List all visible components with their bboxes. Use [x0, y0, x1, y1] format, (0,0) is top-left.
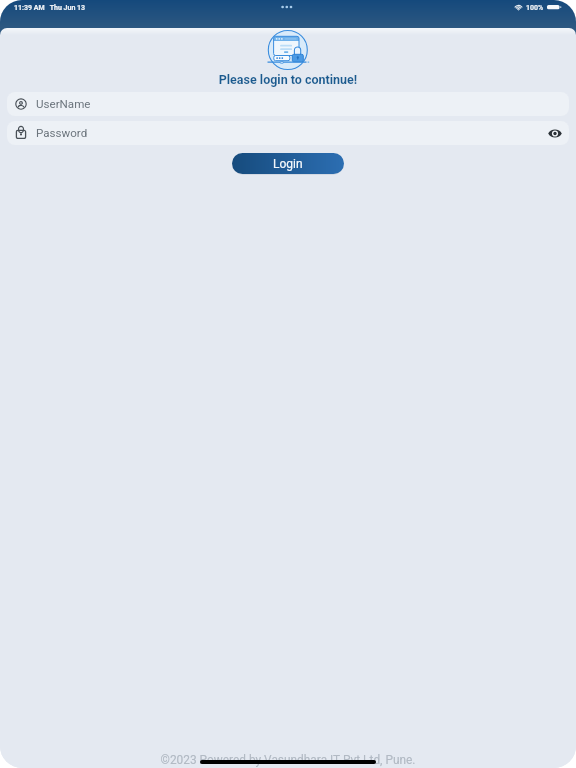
staticText: Please login to continue! [0, 72, 576, 87]
staticText: ©2023 Powered by Vasundhara IT Pvt Ltd, … [0, 753, 576, 767]
button[interactable]: Show password [543, 121, 567, 145]
button[interactable]: Login [232, 153, 344, 174]
staticText: 100% [526, 4, 544, 12]
staticText: UserName [36, 97, 91, 111]
staticText: 11:39 AM Thu Jun 13 [14, 4, 86, 12]
button[interactable]: UserName [7, 92, 569, 116]
button[interactable]: Password [7, 121, 569, 145]
staticText: Login [273, 157, 303, 171]
staticText: Password [36, 126, 88, 140]
